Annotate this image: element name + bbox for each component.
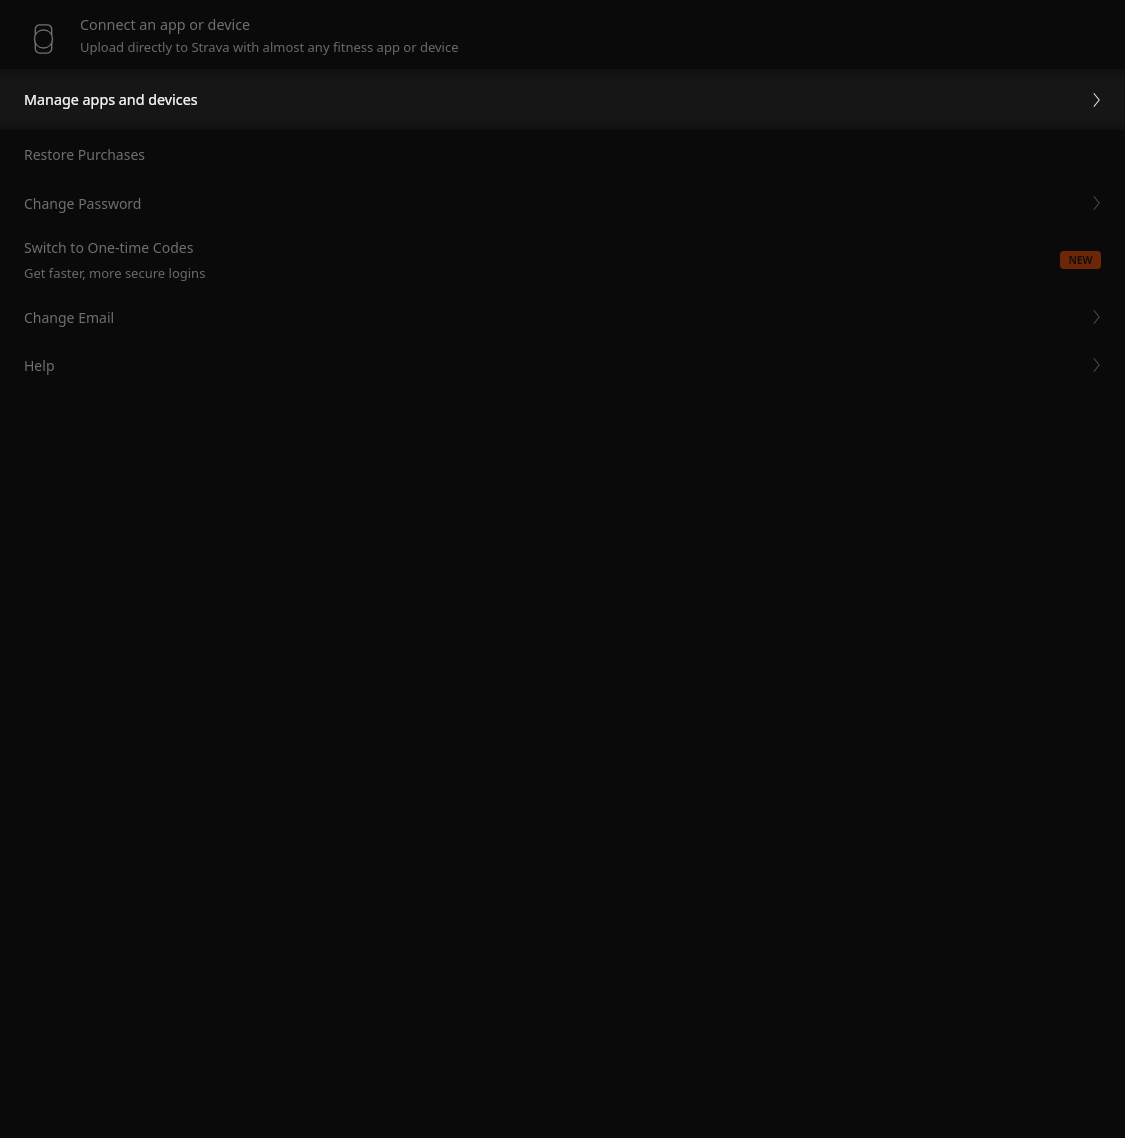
button[interactable]: Restore Purchases bbox=[0, 130, 1125, 179]
button[interactable]: Change Email bbox=[0, 293, 1125, 341]
staticText: Upload directly to Strava with almost an… bbox=[80, 38, 459, 56]
button[interactable]: Change Password bbox=[0, 179, 1125, 227]
staticText: Connect an app or device bbox=[80, 15, 251, 35]
staticText: Help bbox=[24, 356, 55, 375]
staticText: Change Password bbox=[24, 194, 142, 213]
button[interactable]: Watch device bbox=[0, 0, 1125, 69]
button[interactable]: Help bbox=[0, 341, 1125, 389]
staticText: Switch to One-time Codes bbox=[24, 238, 194, 257]
staticText: Change Email bbox=[24, 308, 115, 327]
staticText: Manage apps and devices bbox=[24, 90, 198, 110]
button[interactable]: NEW bbox=[1060, 251, 1101, 269]
staticText: Restore Purchases bbox=[24, 145, 146, 164]
button[interactable]: Switch to One-time Codes bbox=[0, 227, 1125, 293]
button[interactable]: Manage apps and devices bbox=[0, 69, 1125, 130]
other: Watch device bbox=[34, 23, 53, 55]
staticText: NEW bbox=[1068, 253, 1093, 267]
staticText: Get faster, more secure logins bbox=[24, 264, 206, 282]
